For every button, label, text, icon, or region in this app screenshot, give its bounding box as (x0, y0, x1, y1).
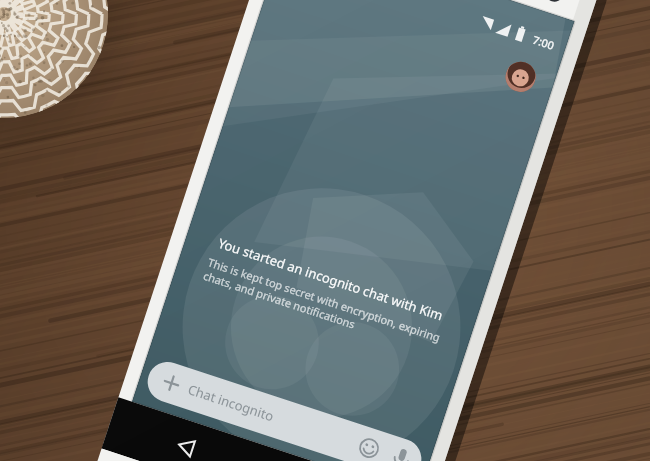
button[interactable]: Back (0, 0, 650, 461)
